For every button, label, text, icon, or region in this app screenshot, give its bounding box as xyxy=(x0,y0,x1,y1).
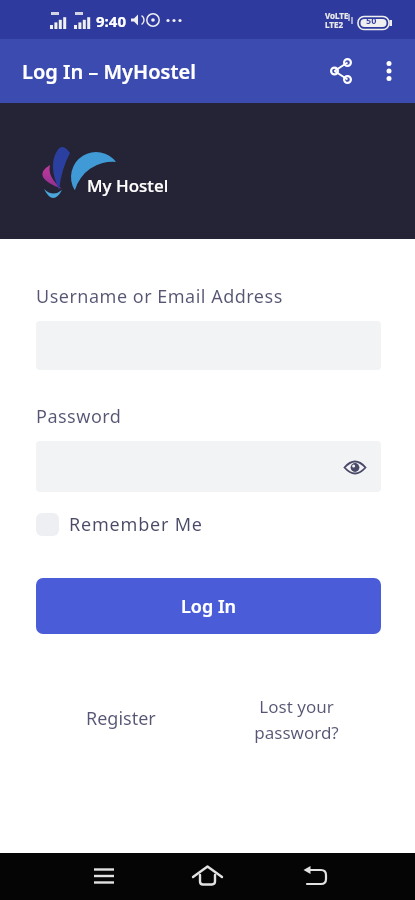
button[interactable] xyxy=(344,458,366,476)
button[interactable] xyxy=(277,853,415,900)
staticText: My Hostel xyxy=(87,174,169,197)
button[interactable]: Lost your password? xyxy=(226,693,366,745)
staticText: Password xyxy=(36,404,122,429)
button[interactable]: Remember Me xyxy=(36,512,203,537)
button[interactable] xyxy=(371,53,407,89)
staticText: Log In xyxy=(181,594,237,619)
staticText: LTE2 xyxy=(325,19,343,30)
staticText: Username or Email Address xyxy=(36,284,283,309)
button[interactable]: Log In xyxy=(36,578,381,634)
button[interactable] xyxy=(322,51,362,91)
staticText: Log In – MyHostel xyxy=(22,58,196,85)
button[interactable] xyxy=(139,853,277,900)
staticText: Remember Me xyxy=(69,512,203,537)
staticText: Lost your password? xyxy=(254,695,339,744)
staticText: 9:40 xyxy=(96,11,126,31)
staticText: 50 xyxy=(366,14,377,26)
button[interactable] xyxy=(0,853,139,900)
button[interactable] xyxy=(36,441,381,492)
staticText: Register xyxy=(86,706,156,731)
button[interactable]: Register xyxy=(61,700,181,736)
staticText: VoLTE xyxy=(325,10,349,21)
